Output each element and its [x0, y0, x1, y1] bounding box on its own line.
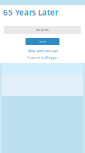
staticText: Blogger — [45, 56, 57, 60]
staticText: Home — [38, 40, 46, 43]
staticText: View web version — [27, 48, 57, 53]
staticText: 65 Years Later — [3, 7, 58, 18]
staticText: Powered by — [27, 56, 44, 60]
staticText: No posts. — [36, 28, 49, 32]
button[interactable]: Home — [25, 38, 59, 45]
button[interactable]: View web version — [27, 48, 57, 53]
